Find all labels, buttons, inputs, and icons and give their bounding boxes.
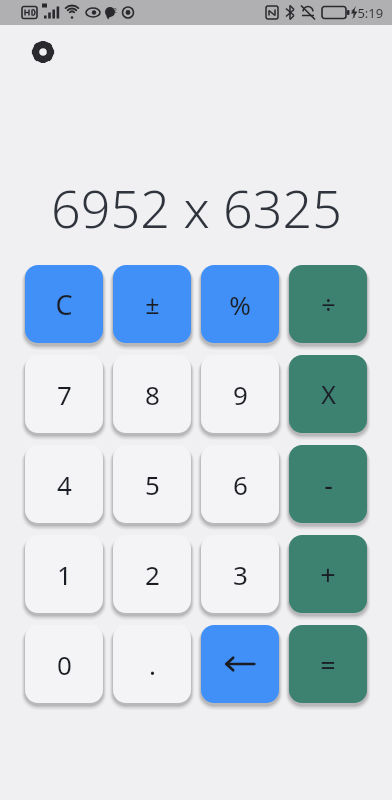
staticText: - [324,466,333,503]
staticText: ÷ [321,287,336,321]
staticText: 5 [145,467,160,502]
button[interactable]: 1 [25,535,103,613]
staticText: 2 [145,557,160,592]
button[interactable]: 2 [113,535,191,613]
button[interactable]: Settings [24,33,62,71]
button[interactable]: 9 [201,355,279,433]
staticText: 0 [57,647,72,682]
staticText: 3 [233,557,248,592]
button[interactable]: ± [113,265,191,343]
button[interactable]: 0 [25,625,103,703]
button[interactable]: Backspace [201,625,279,703]
button[interactable]: + [289,535,367,613]
button[interactable]: 8 [113,355,191,433]
staticText: . [149,647,156,682]
button[interactable]: = [289,625,367,703]
button[interactable]: - [289,445,367,523]
staticText: 15:19 [350,4,384,22]
staticText: + [320,556,336,593]
staticText: 9 [233,377,248,412]
button[interactable]: 6 [201,445,279,523]
button[interactable]: 7 [25,355,103,433]
button[interactable]: % [201,265,279,343]
staticText: 8 [145,377,160,412]
button[interactable]: ÷ [289,265,367,343]
staticText: = [320,646,336,683]
staticText: C [55,286,73,323]
staticText: % [229,287,251,322]
staticText: 7 [57,377,72,412]
staticText: 6 [233,467,248,502]
staticText: 62 [109,6,118,16]
staticText: 1 [57,557,72,592]
staticText: 6952 x 6325 [51,172,342,243]
staticText: 4 [57,467,72,502]
staticText: X [321,377,336,411]
button[interactable]: X [289,355,367,433]
button[interactable]: 5 [113,445,191,523]
button[interactable]: . [113,625,191,703]
button[interactable]: 4 [25,445,103,523]
staticText: ± [145,287,160,321]
button[interactable]: 3 [201,535,279,613]
button[interactable]: C [25,265,103,343]
